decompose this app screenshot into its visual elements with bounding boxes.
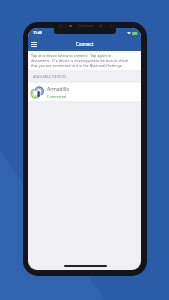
- staticText: Tap on a device below to connect. Tap ag…: [31, 53, 129, 68]
- button[interactable]: Armadillo: [28, 83, 141, 101]
- staticText: AVAILABLE DEVICES: [33, 75, 67, 79]
- staticText: Connected: [47, 94, 67, 99]
- staticText: Armadillo: [47, 86, 70, 93]
- staticText: 11:40: [33, 30, 42, 35]
- button[interactable]: Open navigation drawer: [28, 37, 40, 51]
- staticText: Connect: [76, 41, 94, 47]
